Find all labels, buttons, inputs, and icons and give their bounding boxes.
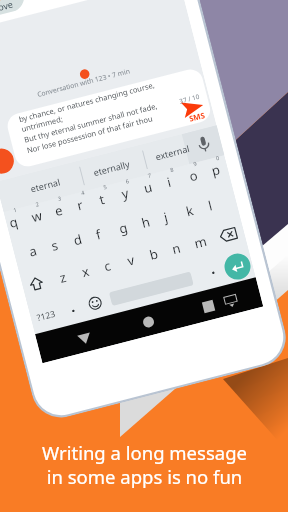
staticText: 7 [147, 171, 153, 180]
staticText: k [184, 201, 195, 220]
button[interactable]: Phone showing a messaging app [0, 0, 288, 424]
staticText: 6 [125, 177, 131, 186]
staticText: t [97, 190, 107, 209]
staticText: e [53, 201, 65, 220]
staticText: a [27, 241, 39, 261]
staticText: q [7, 212, 19, 232]
staticText: Writing a long message in some apps is n… [42, 440, 247, 489]
staticText: d [72, 230, 84, 249]
staticText: SMS [188, 110, 206, 125]
staticText: s [49, 236, 61, 255]
staticText: ?123 [36, 308, 57, 324]
staticText: g [117, 218, 129, 237]
staticText: 37 / 10 [178, 92, 201, 106]
staticText: external [154, 142, 191, 162]
staticText: f [94, 225, 103, 243]
staticText: r [75, 195, 85, 214]
staticText: p [210, 160, 222, 180]
staticText: l [206, 196, 215, 215]
staticText: x [80, 262, 91, 281]
staticText: n [170, 238, 183, 258]
staticText: by chance, or natures changing course, u… [18, 80, 164, 156]
staticText: v [125, 250, 137, 269]
staticText: 5 [103, 183, 108, 191]
staticText: 4 [80, 188, 86, 197]
staticText: My Love [0, 0, 14, 18]
staticText: 9 [193, 159, 198, 168]
staticText: 1 [12, 206, 18, 214]
staticText: y [119, 184, 131, 203]
staticText: Conversation with 123 • 7 min [36, 66, 131, 99]
staticText: b [148, 244, 160, 264]
staticText: j [162, 208, 170, 226]
staticText: 3 [57, 194, 63, 203]
staticText: 2 [35, 200, 41, 209]
staticText: c [102, 256, 113, 275]
staticText: 0 [215, 154, 221, 162]
staticText: eternally [92, 157, 131, 178]
staticText: i [165, 173, 173, 191]
staticText: h [139, 212, 153, 232]
staticText: m [192, 232, 209, 252]
staticText: z [58, 268, 69, 287]
staticText: eternal [29, 175, 62, 195]
staticText: 8 [169, 165, 175, 174]
staticText: o [187, 166, 199, 185]
staticText: w [29, 206, 45, 226]
staticText: u [142, 177, 155, 197]
